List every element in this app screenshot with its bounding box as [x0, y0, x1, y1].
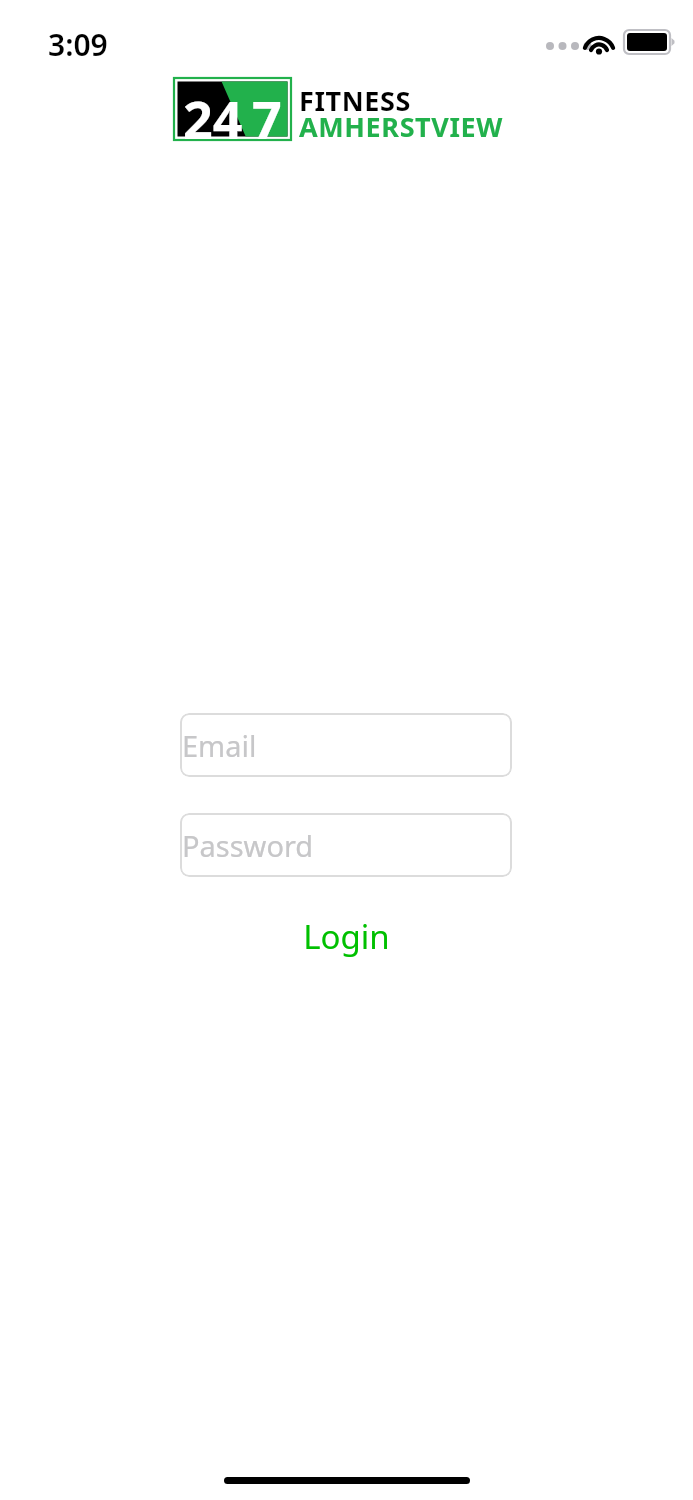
staticText: 3:09 — [48, 24, 108, 65]
staticText: Email — [182, 726, 257, 765]
staticText: AMHERSTVIEW — [299, 108, 503, 145]
button[interactable]: Email — [180, 713, 512, 777]
staticText: Login — [303, 914, 390, 959]
button[interactable]: Login — [180, 911, 512, 961]
staticText: 24 — [183, 83, 243, 154]
staticText: Password — [182, 826, 314, 865]
staticText: FITNESS — [299, 82, 411, 119]
button[interactable]: Password — [180, 813, 512, 877]
staticText: 7 — [252, 83, 282, 154]
